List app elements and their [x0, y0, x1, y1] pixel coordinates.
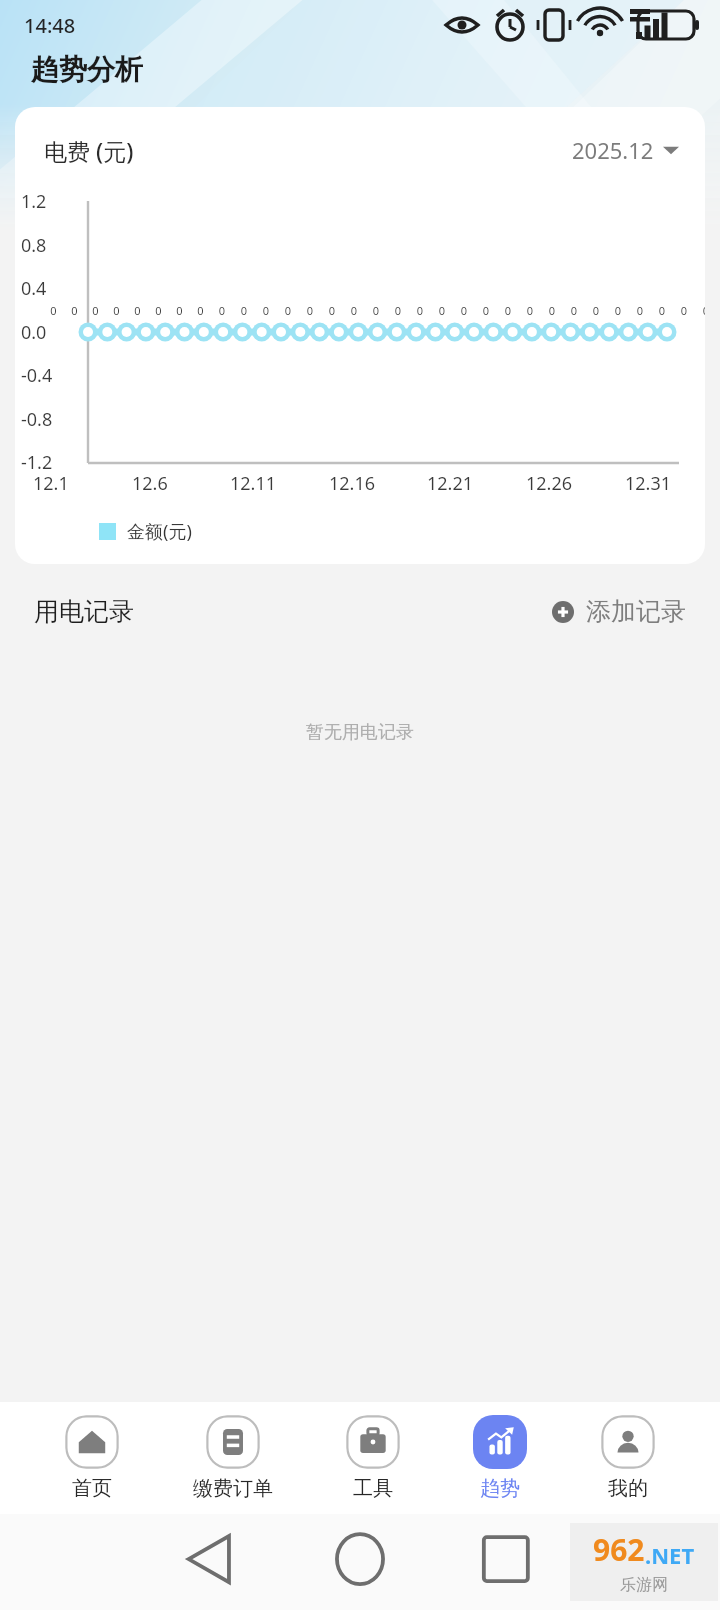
staticText: 12.26	[526, 471, 573, 496]
staticText: 2025.12	[572, 135, 654, 165]
staticText: 0	[563, 303, 585, 318]
staticText: 12.6	[132, 471, 168, 496]
staticText: 0	[585, 303, 607, 318]
staticText: 0	[106, 303, 127, 318]
staticText: 0	[169, 303, 190, 318]
staticText: 0	[541, 303, 563, 318]
staticText: 0	[497, 303, 519, 318]
staticText: 0	[43, 303, 64, 318]
staticText: 添加记录	[586, 596, 686, 627]
button[interactable]: 电费 (元)	[15, 107, 705, 564]
staticText: 首页	[72, 1476, 112, 1501]
staticText: 12.31	[625, 471, 672, 496]
staticText: 0	[343, 303, 365, 318]
staticText: 0	[651, 303, 673, 318]
staticText: 乐游网	[620, 1575, 668, 1595]
staticText: -0.4	[21, 363, 53, 388]
button[interactable]: Profile	[593, 1415, 663, 1501]
staticText: 0	[85, 303, 106, 318]
button[interactable]: 添加记录	[552, 590, 686, 633]
staticText: 0	[453, 303, 475, 318]
staticText: 12.16	[329, 471, 376, 496]
staticText: 962	[593, 1529, 645, 1570]
staticText: 0	[190, 303, 211, 318]
staticText: 0	[211, 303, 233, 318]
staticText: 12.11	[230, 471, 277, 496]
staticText: 用电记录	[34, 596, 134, 627]
staticText: 14:48	[24, 12, 76, 39]
staticText: -1.2	[21, 450, 53, 475]
staticText: 0	[629, 303, 651, 318]
staticText: 0	[673, 303, 695, 318]
staticText: 0	[431, 303, 453, 318]
staticText: 12.21	[427, 471, 474, 496]
staticText: 缴费订单	[193, 1476, 273, 1501]
staticText: 0	[607, 303, 629, 318]
staticText: 1.2	[21, 189, 47, 214]
staticText: 0	[519, 303, 541, 318]
button[interactable]: 2025.12	[568, 131, 683, 169]
staticText: 12.1	[33, 471, 69, 496]
staticText: 0	[127, 303, 148, 318]
button[interactable]: Tools	[338, 1415, 408, 1501]
staticText: -0.8	[21, 407, 53, 432]
button[interactable]: Home	[57, 1415, 127, 1501]
staticText: 0	[299, 303, 321, 318]
staticText: 0	[148, 303, 169, 318]
staticText: 趋势	[480, 1476, 520, 1501]
button[interactable]: Payment orders	[185, 1415, 281, 1501]
staticText: 0.8	[21, 233, 47, 258]
staticText: .NET	[645, 1540, 695, 1570]
staticText: 暂无用电记录	[0, 721, 720, 744]
staticText: 我的	[608, 1476, 648, 1501]
button[interactable]: Trends	[465, 1415, 535, 1501]
staticText: 0	[321, 303, 343, 318]
staticText: 工具	[353, 1476, 393, 1501]
staticText: 金额(元)	[127, 519, 192, 544]
staticText: 0	[387, 303, 409, 318]
staticText: 0	[695, 303, 705, 318]
staticText: 0	[64, 303, 85, 318]
staticText: 电费 (元)	[44, 135, 134, 166]
staticText: 0.0	[21, 320, 47, 345]
staticText: 0	[409, 303, 431, 318]
staticText: 趋势分析	[31, 52, 143, 87]
staticText: 0	[365, 303, 387, 318]
staticText: 0	[233, 303, 255, 318]
staticText: 0	[277, 303, 299, 318]
staticText: 0	[255, 303, 277, 318]
staticText: 0	[475, 303, 497, 318]
staticText: 0.4	[21, 276, 47, 301]
